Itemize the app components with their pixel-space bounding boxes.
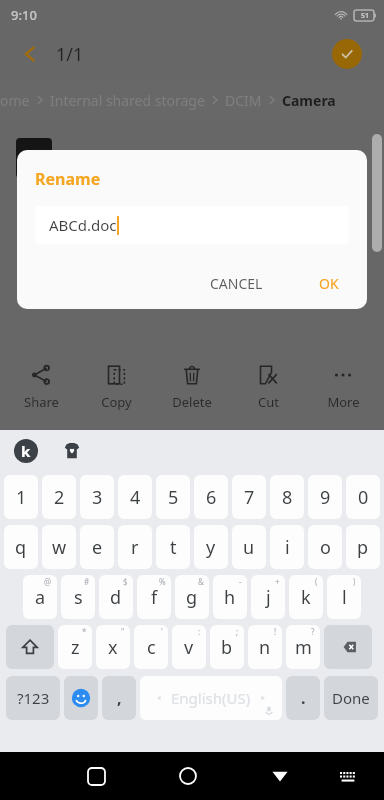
button[interactable]: Keyboard menu bbox=[14, 439, 38, 463]
staticText: c bbox=[147, 635, 156, 660]
staticText: ' bbox=[161, 626, 163, 637]
button[interactable]: q bbox=[4, 525, 38, 569]
button[interactable]: 2 bbox=[42, 475, 76, 519]
staticText: @ bbox=[44, 576, 52, 587]
button[interactable]: ) bbox=[327, 575, 361, 619]
staticText: ABCd.doc bbox=[49, 215, 117, 235]
staticText: . bbox=[301, 687, 306, 709]
staticText: ; bbox=[236, 626, 239, 637]
button[interactable]: Space bbox=[140, 676, 282, 720]
staticText: w bbox=[52, 535, 67, 560]
staticText: t bbox=[170, 535, 177, 560]
staticText: More bbox=[327, 393, 360, 411]
button[interactable]: Back bbox=[12, 36, 48, 72]
button[interactable]: Key bbox=[6, 625, 54, 669]
button[interactable]: @ bbox=[23, 575, 57, 619]
button[interactable]: e bbox=[80, 525, 114, 569]
button[interactable]: ' bbox=[134, 625, 168, 669]
staticText: m bbox=[295, 635, 312, 660]
button[interactable]: 0 bbox=[346, 475, 380, 519]
button[interactable]: ( bbox=[289, 575, 323, 619]
button[interactable]: Share bbox=[6, 359, 76, 415]
button[interactable]: Back bbox=[262, 758, 298, 794]
button[interactable] bbox=[64, 676, 98, 720]
button[interactable]: * bbox=[58, 625, 92, 669]
staticText: " bbox=[121, 626, 125, 637]
staticText: 9:10 bbox=[11, 6, 37, 24]
button[interactable]: 8 bbox=[270, 475, 304, 519]
button[interactable]: " bbox=[96, 625, 130, 669]
button[interactable]: 9 bbox=[308, 475, 342, 519]
staticText: i bbox=[285, 535, 290, 560]
staticText: g bbox=[186, 585, 198, 610]
button[interactable]: + bbox=[251, 575, 285, 619]
button[interactable]: Recents bbox=[78, 758, 114, 794]
staticText: h bbox=[224, 585, 236, 610]
button[interactable]: # bbox=[61, 575, 95, 619]
button[interactable]: o bbox=[308, 525, 342, 569]
staticText: Delete bbox=[172, 393, 212, 411]
button[interactable]: 3 bbox=[80, 475, 114, 519]
staticText: 8 bbox=[282, 485, 293, 510]
button[interactable]: r bbox=[118, 525, 152, 569]
staticText: : bbox=[198, 626, 201, 637]
button[interactable]: 6 bbox=[194, 475, 228, 519]
button[interactable]: 1 bbox=[4, 475, 38, 519]
button[interactable]: i bbox=[270, 525, 304, 569]
staticText: 4 bbox=[130, 485, 141, 510]
button[interactable]: ABCd.doc bbox=[35, 206, 349, 244]
button[interactable]: & bbox=[175, 575, 209, 619]
staticText: Rename bbox=[35, 168, 101, 190]
button[interactable]: ! bbox=[248, 625, 282, 669]
staticText: z bbox=[71, 635, 80, 660]
button[interactable]: Key bbox=[324, 625, 372, 669]
staticText: English(US) bbox=[171, 688, 251, 708]
button[interactable]: , bbox=[102, 676, 136, 720]
staticText: 7 bbox=[244, 485, 255, 510]
staticText: 3 bbox=[92, 485, 103, 510]
button[interactable]: $ bbox=[99, 575, 133, 619]
staticText: $ bbox=[123, 576, 128, 587]
button[interactable]: Theme bbox=[60, 439, 84, 463]
button[interactable]: CANCEL bbox=[200, 266, 273, 301]
button[interactable]: Cut bbox=[233, 359, 303, 415]
button[interactable]: ; bbox=[210, 625, 244, 669]
staticText: v bbox=[184, 635, 194, 660]
button[interactable]: Select all bbox=[332, 39, 362, 69]
staticText: ? bbox=[311, 626, 315, 637]
button[interactable]: ? bbox=[286, 625, 320, 669]
staticText: Done bbox=[332, 688, 370, 708]
staticText: 2 bbox=[54, 485, 65, 510]
button[interactable]: 7 bbox=[232, 475, 266, 519]
button[interactable]: u bbox=[232, 525, 266, 569]
staticText: , bbox=[117, 687, 122, 709]
button[interactable]: Done bbox=[324, 676, 378, 720]
staticText: Copy bbox=[101, 393, 132, 411]
button[interactable]: . bbox=[286, 676, 320, 720]
staticText: n bbox=[259, 635, 271, 660]
button[interactable]: : bbox=[172, 625, 206, 669]
button[interactable]: 5 bbox=[156, 475, 190, 519]
staticText: p bbox=[357, 535, 369, 560]
staticText: k bbox=[301, 585, 311, 610]
staticText: b bbox=[221, 635, 233, 660]
button[interactable]: - bbox=[213, 575, 247, 619]
staticText: Internal shared storage bbox=[50, 91, 205, 110]
staticText: * bbox=[82, 626, 87, 637]
button[interactable]: t bbox=[156, 525, 190, 569]
button[interactable]: Switch keyboard bbox=[332, 760, 364, 792]
button[interactable]: Delete bbox=[157, 359, 227, 415]
button[interactable]: p bbox=[346, 525, 380, 569]
button[interactable]: 4 bbox=[118, 475, 152, 519]
button[interactable]: Copy bbox=[81, 359, 151, 415]
button[interactable]: y bbox=[194, 525, 228, 569]
button[interactable]: ?123 bbox=[6, 676, 60, 720]
staticText: u bbox=[243, 535, 255, 560]
staticText: % bbox=[159, 576, 166, 587]
button[interactable]: OK bbox=[309, 266, 349, 301]
button[interactable]: Home bbox=[170, 758, 206, 794]
staticText: Share bbox=[24, 393, 59, 411]
button[interactable]: % bbox=[137, 575, 171, 619]
button[interactable]: w bbox=[42, 525, 76, 569]
button[interactable]: More bbox=[308, 359, 378, 415]
